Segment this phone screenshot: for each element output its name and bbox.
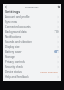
button[interactable]: Display size: [3, 44, 61, 49]
button[interactable]: Connected accounts: [3, 24, 61, 29]
button[interactable]: Help and feedback: [3, 74, 61, 79]
staticText: Settings: [5, 9, 21, 14]
button[interactable]: Device status: [3, 69, 61, 74]
staticText: Account and profile: [5, 15, 30, 19]
staticText: Privacy controls: [5, 60, 25, 64]
staticText: Storage: [5, 55, 15, 59]
staticText: Sync now: [5, 20, 17, 24]
button[interactable]: Battery saver: [3, 49, 61, 54]
staticText: Background data: [5, 30, 27, 34]
button[interactable]: Storage: [3, 54, 61, 59]
staticText: Display size: [5, 45, 20, 49]
staticText: Battery saver: [5, 50, 22, 54]
button[interactable]: Sounds and vibration: [3, 39, 61, 44]
button[interactable]: Privacy controls: [3, 59, 61, 64]
staticText: Sounds and vibration: [5, 40, 32, 44]
button[interactable]: Background data: [3, 29, 61, 34]
staticText: Connected accounts: [5, 25, 31, 29]
button[interactable]: Security check: [3, 64, 61, 69]
button[interactable]: Toggle: [54, 50, 59, 53]
button[interactable]: Toggle: [54, 30, 59, 33]
staticText: Device status: [5, 70, 22, 74]
button[interactable]: Notifications: [3, 34, 61, 39]
button[interactable]: Search: [56, 4, 61, 9]
staticText: Needs attention: [40, 70, 59, 73]
button[interactable]: Sync now: [3, 19, 61, 24]
button[interactable]: Account and profile: [3, 14, 61, 19]
staticText: Preferences: [25, 5, 39, 8]
staticText: Help and feedback: [5, 75, 29, 79]
staticText: Security check: [5, 65, 23, 69]
staticText: Notifications: [5, 35, 21, 39]
button[interactable]: Back: [3, 4, 8, 9]
